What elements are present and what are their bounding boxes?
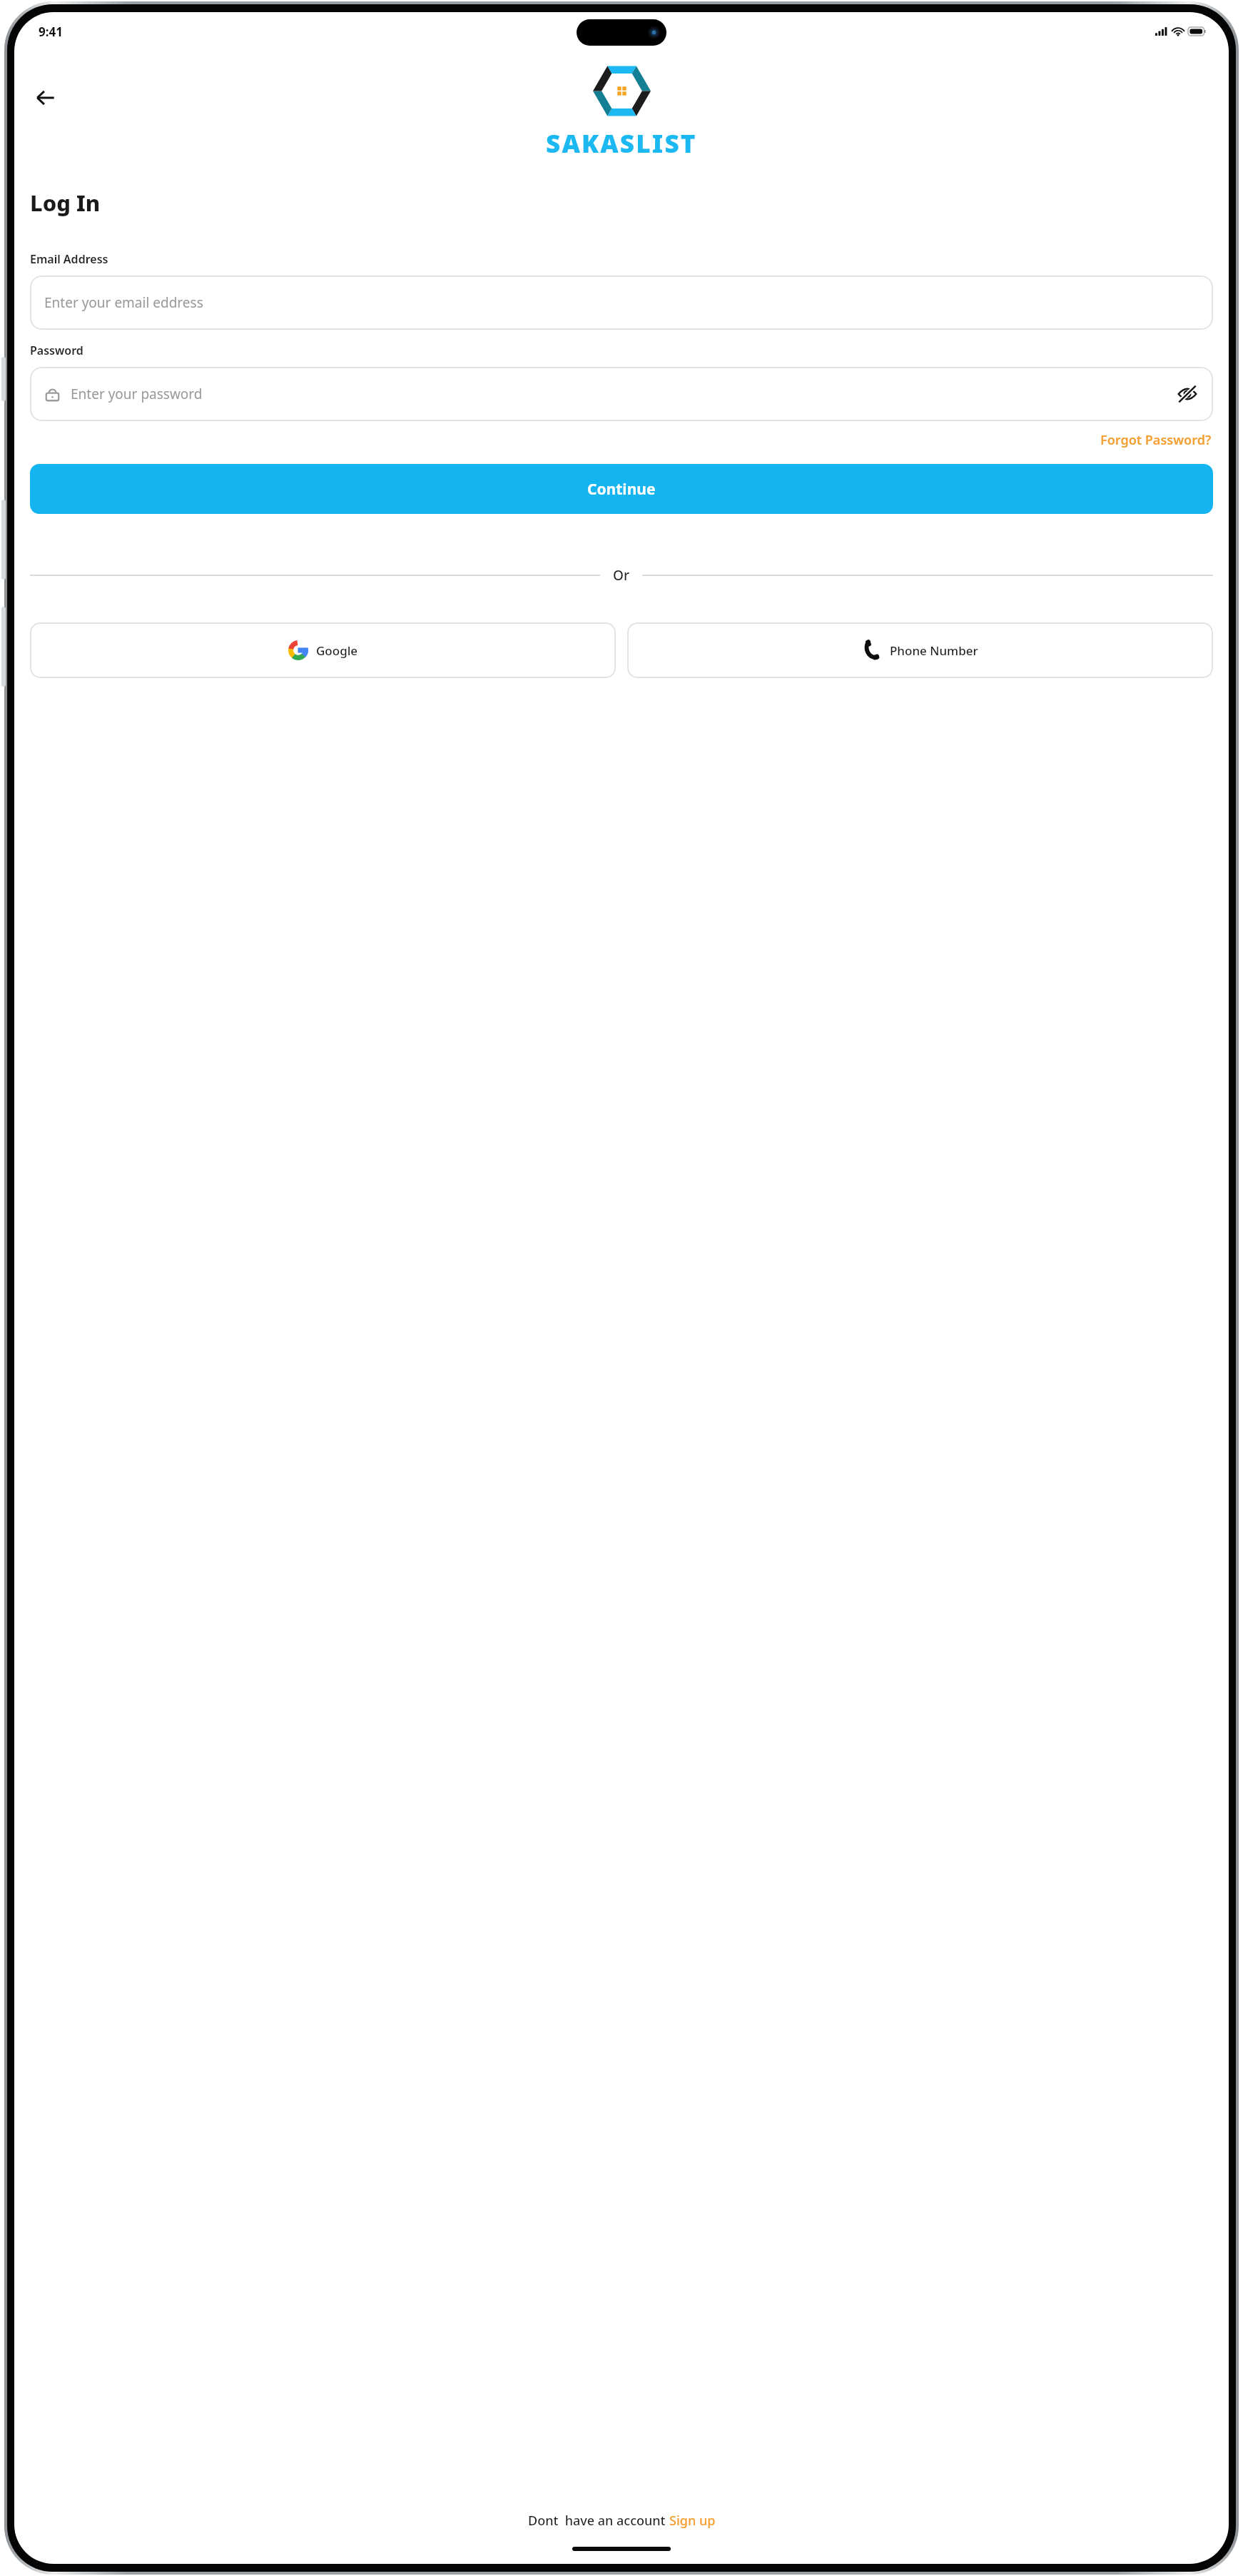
staticText: Continue <box>587 479 656 500</box>
button[interactable]: Back <box>30 82 61 113</box>
button[interactable]: Continue <box>30 464 1213 514</box>
staticText: Google <box>316 642 358 659</box>
button[interactable]: Google <box>30 622 616 678</box>
button[interactable]: Show password <box>1176 383 1199 405</box>
staticText: 9:41 <box>39 24 63 40</box>
staticText: Phone Number <box>890 642 978 659</box>
staticText: Password <box>30 343 83 358</box>
staticText: Enter your password <box>71 385 1176 403</box>
staticText: Enter your email eddress <box>44 293 1199 312</box>
button[interactable]: Enter your password <box>30 367 1213 421</box>
button[interactable]: Sign up <box>669 2512 716 2530</box>
button[interactable]: Enter your email eddress <box>30 276 1213 330</box>
staticText: Dont have an account <box>528 2512 669 2530</box>
staticText: Log In <box>30 188 101 218</box>
staticText: SAKASLIST <box>546 126 697 161</box>
button[interactable]: Phone Number <box>627 622 1213 678</box>
staticText: Email Address <box>30 251 108 267</box>
staticText: Or <box>613 566 629 585</box>
button[interactable]: Forgot Password? <box>1099 430 1213 450</box>
